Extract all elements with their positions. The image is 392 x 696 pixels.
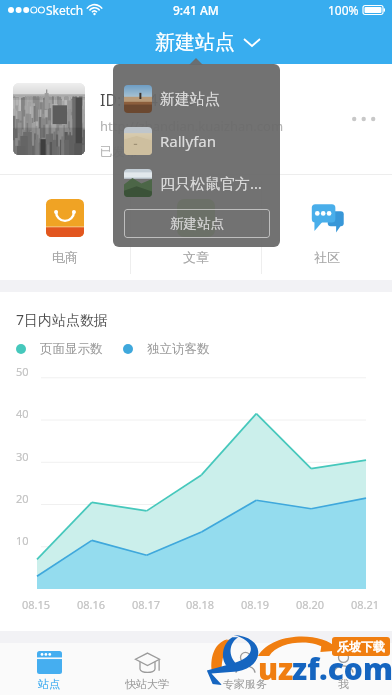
staticText: uz <box>258 648 294 689</box>
button[interactable]: 站点 <box>0 643 98 695</box>
button[interactable]: 新建站点 <box>145 20 270 64</box>
staticText: Sketch <box>46 2 84 18</box>
staticText: 站点 <box>38 677 60 691</box>
staticText: 08.21 <box>351 597 380 612</box>
staticText: 10 <box>16 533 29 548</box>
button[interactable]: 文章 <box>130 175 261 280</box>
button[interactable]: 我 <box>294 643 392 695</box>
button[interactable]: 新建站点 <box>124 85 270 113</box>
staticText: 文章 <box>183 249 209 265</box>
button[interactable]: 四只松鼠官方… <box>124 169 270 197</box>
staticText: 50 <box>16 364 29 379</box>
button[interactable]: 电商 <box>0 175 130 280</box>
staticText: 08.20 <box>296 597 325 612</box>
staticText: Rallyfan <box>160 131 216 151</box>
staticText: 社区 <box>314 249 340 265</box>
staticText: 我 <box>338 677 349 691</box>
staticText: 7日内站点数据 <box>16 310 109 329</box>
staticText: http://zhandian.kuaizhan.com <box>100 117 284 135</box>
staticText: 9:41 AM <box>173 2 219 18</box>
button[interactable]: ID:12345678 <box>0 64 392 174</box>
staticText: 20 <box>16 491 29 506</box>
button[interactable]: 社区 <box>261 175 392 280</box>
staticText: 08.15 <box>22 597 51 612</box>
staticText: 电商 <box>52 249 78 265</box>
staticText: 页面显示数 <box>40 341 103 357</box>
staticText: 08.19 <box>241 597 270 612</box>
button[interactable]: 新建站点 <box>124 209 270 238</box>
staticText: 新建站点 <box>160 90 220 109</box>
staticText: ID:12345678 <box>100 89 195 111</box>
staticText: 40 <box>16 406 29 421</box>
staticText: 新建站点 <box>170 215 224 232</box>
staticText: 乐坡下载 <box>337 639 385 654</box>
button[interactable]: More options <box>342 97 386 141</box>
button[interactable]: 专家服务 <box>196 643 294 695</box>
staticText: 08.16 <box>77 597 106 612</box>
staticText: 08.18 <box>186 597 215 612</box>
staticText: 100% <box>328 2 359 18</box>
staticText: 08.17 <box>132 597 161 612</box>
staticText: 独立访客数 <box>147 341 210 357</box>
staticText: 专家服务 <box>223 677 267 691</box>
button[interactable]: 快站大学 <box>98 643 196 695</box>
staticText: 快站大学 <box>125 677 169 691</box>
staticText: 新建站点 <box>155 30 235 55</box>
staticText: 四只松鼠官方… <box>160 173 262 193</box>
staticText: 已发布 <box>100 144 138 160</box>
staticText: 30 <box>16 449 29 464</box>
staticText: zf.com <box>292 648 392 689</box>
button[interactable]: Rallyfan <box>124 127 270 155</box>
